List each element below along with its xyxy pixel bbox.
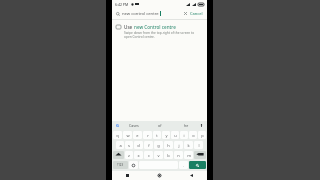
button[interactable]: m [184,151,193,159]
button[interactable]: i [180,131,188,139]
button[interactable]: p [198,131,206,139]
button[interactable]: Back [175,171,207,180]
staticText: G [116,123,119,128]
button[interactable]: q [113,131,122,139]
button[interactable]: Search [112,8,207,19]
staticText: m [187,153,191,158]
button[interactable]: . [179,161,188,169]
button[interactable]: Google [115,123,120,128]
button[interactable]: he [173,123,199,128]
button[interactable]: Backspace [194,151,206,159]
staticText: p [201,133,204,138]
button[interactable]: l [194,141,203,149]
staticText: d [137,143,140,148]
staticText: i [183,133,185,138]
button[interactable]: Cancel [190,11,203,16]
staticText: new control centre [122,11,159,17]
staticText: a [119,143,122,148]
other: Search [116,12,120,16]
staticText: r [147,133,149,138]
staticText: o [192,133,195,138]
staticText: ?123 [117,163,124,167]
staticText: k [187,143,190,148]
button[interactable]: r [143,131,152,139]
button[interactable]: of [147,123,173,128]
staticText: s [128,143,130,148]
button[interactable]: c [144,151,153,159]
staticText: x [137,153,140,158]
button[interactable]: u [171,131,179,139]
button[interactable]: o [189,131,197,139]
staticText: Cancel [190,11,203,16]
staticText: Swipe down from the top-right of the scr… [124,31,202,39]
button[interactable]: t [153,131,161,139]
button[interactable]: Recents [112,171,143,180]
staticText: new Control centre [134,24,176,30]
staticText: z [128,153,130,158]
button[interactable]: v [154,151,163,159]
staticText: w [126,133,130,138]
staticText: c [148,153,150,158]
button[interactable]: Shift [113,151,124,159]
staticText: . [183,163,184,168]
button[interactable]: j [174,141,183,149]
other: Clear [184,12,187,15]
staticText: Use [124,24,134,30]
button[interactable]: s [125,141,133,149]
button[interactable]: ?123 [113,161,128,169]
button[interactable]: e [133,131,142,139]
button[interactable]: Search [189,161,206,169]
staticText: l [198,143,200,148]
button[interactable]: f [144,141,153,149]
button[interactable]: n [174,151,183,159]
staticText: of [158,123,162,128]
staticText: he [184,123,189,128]
button[interactable]: Voice input [199,123,204,128]
button[interactable]: b [164,151,173,159]
staticText: e [136,133,139,138]
staticText: j [178,143,180,148]
button[interactable]: d [134,141,143,149]
button[interactable]: Emoji [129,161,138,169]
staticText: v [157,153,160,158]
button[interactable]: g [154,141,163,149]
staticText: n [177,153,180,158]
staticText: t [156,133,158,138]
staticText: h [167,143,170,148]
button[interactable]: Cases [120,123,147,128]
button[interactable]: k [184,141,193,149]
button[interactable]: w [123,131,132,139]
staticText: 6:42 PM [115,2,129,7]
staticText: b [167,153,170,158]
staticText: f [148,143,150,148]
other: Control centre [116,25,121,29]
staticText: q [116,133,119,138]
staticText: y [165,133,168,138]
staticText: u [174,133,177,138]
button[interactable]: z [125,151,133,159]
button[interactable]: x [134,151,143,159]
button[interactable]: a [116,141,124,149]
button[interactable]: h [164,141,173,149]
button[interactable]: y [162,131,170,139]
button[interactable]: Control centre [112,20,207,43]
staticText: g [157,143,160,148]
staticText: Cases [129,123,139,128]
button[interactable]: Home [143,171,175,180]
